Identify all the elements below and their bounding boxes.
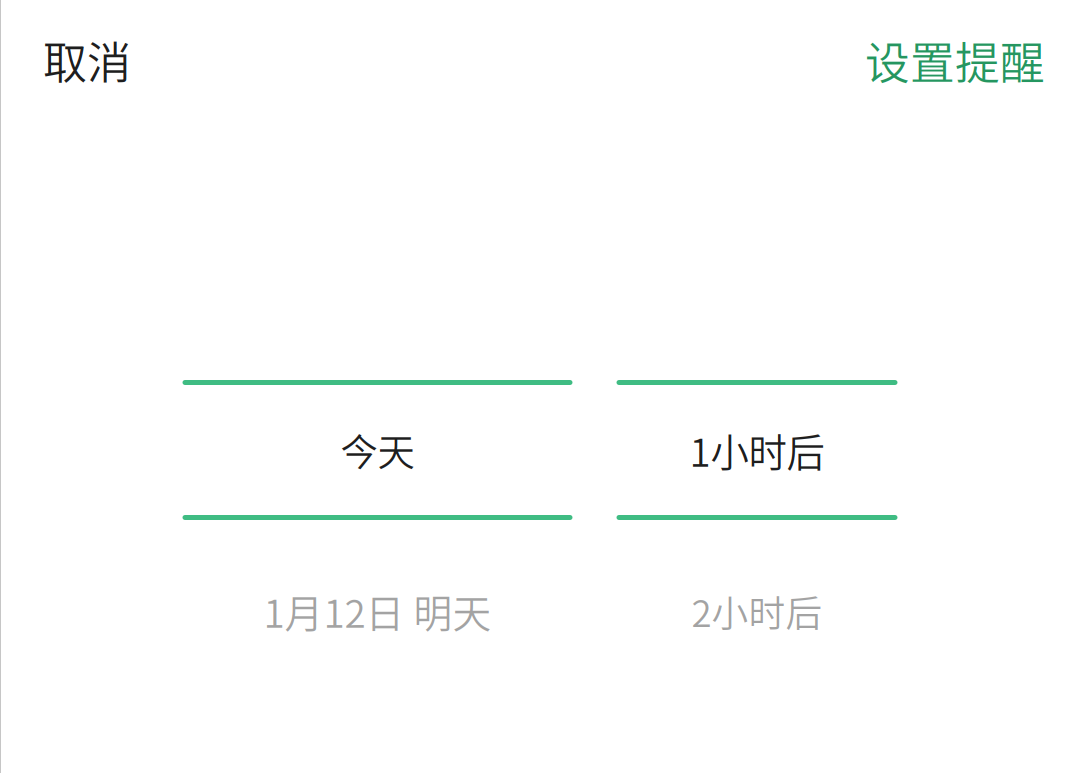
staticText: 1月12日 明天 <box>263 583 491 639</box>
staticText: 设置提醒 <box>865 28 1045 92</box>
button[interactable]: 设置提醒 <box>835 8 1080 112</box>
staticText: 1小时后 <box>689 422 824 478</box>
staticText: 取消 <box>43 28 131 92</box>
button[interactable]: 1小时后 <box>616 385 897 515</box>
button[interactable]: 2小时后 <box>616 520 897 702</box>
staticText: 2小时后 <box>691 584 822 638</box>
button[interactable]: 今天 <box>182 385 572 515</box>
button[interactable]: 1月12日 明天 <box>182 520 572 702</box>
button[interactable]: 取消 <box>0 8 161 112</box>
staticText: 今天 <box>340 423 414 477</box>
